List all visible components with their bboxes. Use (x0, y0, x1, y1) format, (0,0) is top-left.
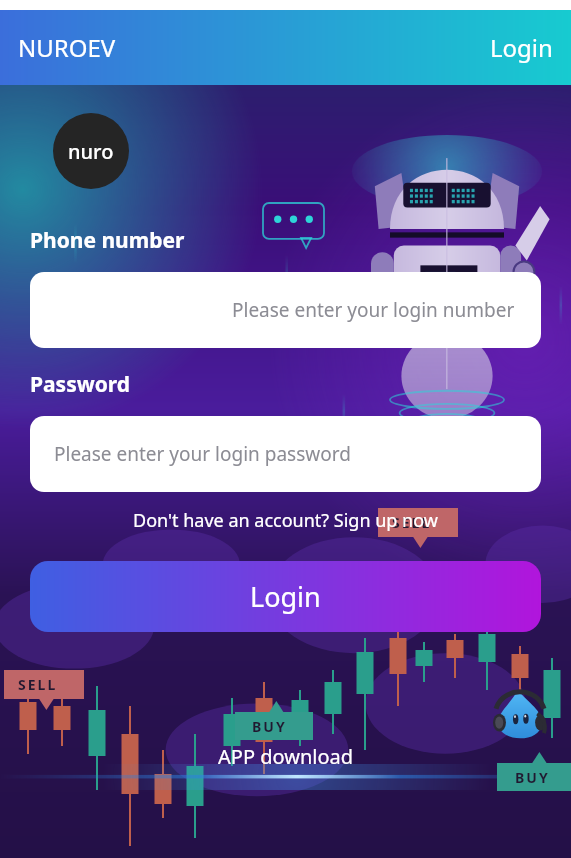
staticText: Phone number (30, 226, 185, 255)
staticText: Password (30, 370, 131, 399)
staticText: Please enter your login number (232, 297, 515, 323)
button[interactable]: Login (30, 561, 541, 632)
button[interactable]: Login (472, 25, 571, 70)
staticText: Login (490, 31, 553, 64)
button[interactable]: Please enter your login number (30, 272, 541, 348)
staticText: APP download (218, 743, 354, 770)
staticText: BUY (515, 768, 550, 787)
button[interactable]: APP download (0, 743, 571, 770)
staticText: Login (250, 578, 321, 615)
button[interactable]: Please enter your login password (30, 416, 541, 492)
staticText: SELL (18, 675, 58, 694)
button[interactable]: Don't have an account? Sign up now (30, 508, 541, 533)
staticText: Please enter your login password (54, 441, 351, 467)
staticText: SELL (392, 513, 432, 532)
staticText: BUY (252, 717, 287, 736)
staticText: NUROEV (18, 31, 116, 64)
button[interactable]: nuro logo (53, 113, 129, 189)
staticText: nuro (68, 138, 114, 165)
staticText: Don't have an account? Sign up now (133, 508, 438, 533)
